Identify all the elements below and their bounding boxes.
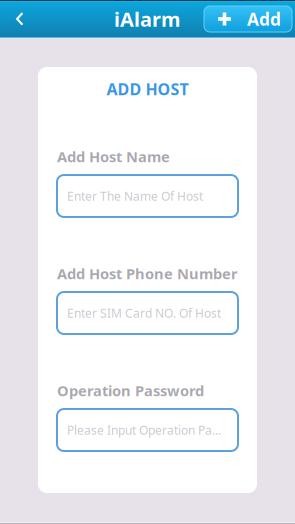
staticText: Operation Password (57, 381, 204, 400)
button[interactable]: Enter The Name Of Host (57, 175, 238, 217)
button[interactable]: Enter SIM Card NO. Of Host (57, 292, 238, 334)
staticText: Enter SIM Card NO. Of Host (67, 305, 221, 321)
staticText: Add Host Name (57, 147, 170, 166)
staticText: ADD HOST (106, 78, 188, 100)
staticText: Enter The Name Of Host (67, 188, 203, 204)
button[interactable]: Add (196, 0, 295, 38)
staticText: Add Host Phone Number (57, 264, 238, 283)
staticText: Add (247, 7, 281, 30)
button[interactable]: Back (0, 0, 43, 38)
staticText: Please Input Operation Pa... (67, 422, 221, 438)
button[interactable]: Please Input Operation Pa... (57, 409, 238, 451)
staticText: iAlarm (114, 6, 181, 32)
